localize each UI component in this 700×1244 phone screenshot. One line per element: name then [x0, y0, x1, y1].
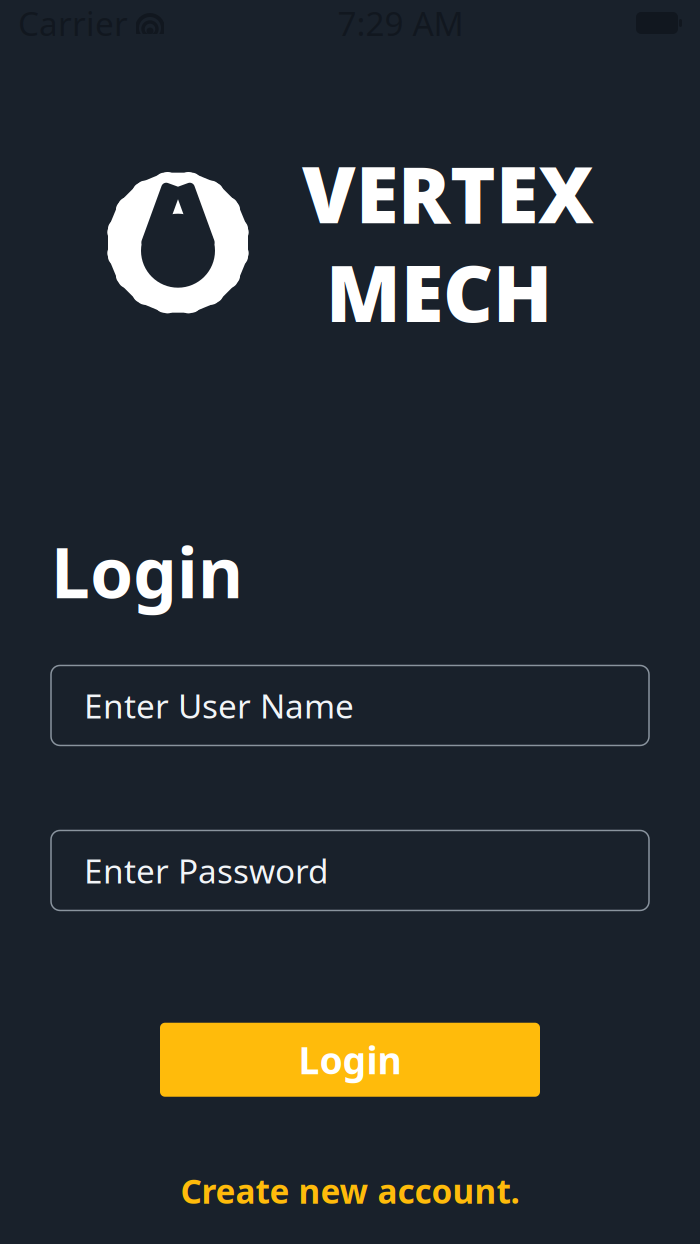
- staticText: Login: [51, 525, 243, 617]
- staticText: Login: [298, 1035, 401, 1084]
- button[interactable]: Login: [160, 1023, 540, 1097]
- staticText: Carrier: [18, 1, 128, 45]
- staticText: VERTEX: [302, 142, 594, 245]
- staticText: Create new account.: [180, 1169, 519, 1213]
- button[interactable]: Enter User Name: [51, 665, 649, 745]
- staticText: 7:29 AM: [337, 1, 463, 45]
- staticText: Enter Password: [84, 848, 329, 893]
- staticText: MECH: [326, 241, 552, 343]
- button[interactable]: Enter Password: [51, 830, 649, 910]
- staticText: Enter User Name: [84, 683, 354, 728]
- button[interactable]: Create new account.: [168, 1161, 531, 1221]
